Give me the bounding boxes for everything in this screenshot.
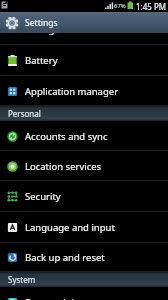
staticText: Security [25, 190, 61, 203]
button[interactable]: Battery [0, 45, 168, 76]
button[interactable]: Location services [0, 151, 168, 181]
staticText: Personal [8, 108, 41, 119]
button[interactable]: Storage [0, 14, 168, 45]
staticText: 67% [114, 2, 126, 10]
button[interactable]: Accounts and sync [0, 121, 168, 151]
staticText: Date and time [25, 296, 89, 300]
staticText: Storage [25, 23, 60, 36]
button[interactable]: Date and time [0, 287, 168, 300]
button[interactable]: Settings [0, 12, 168, 33]
button[interactable]: Language and input [0, 212, 168, 243]
button[interactable]: Back up and reset [0, 243, 168, 272]
staticText: Location services [25, 160, 102, 173]
staticText: Battery [25, 54, 58, 67]
staticText: Settings [25, 17, 58, 29]
button[interactable]: Application manager [0, 76, 168, 106]
staticText: Language and input [25, 221, 115, 234]
staticText: System [8, 274, 36, 285]
staticText: 1:45 PM [136, 1, 167, 12]
staticText: Back up and reset [25, 251, 105, 264]
button[interactable]: Security [0, 181, 168, 212]
staticText: Application manager [25, 85, 119, 98]
staticText: Accounts and sync [25, 130, 108, 143]
